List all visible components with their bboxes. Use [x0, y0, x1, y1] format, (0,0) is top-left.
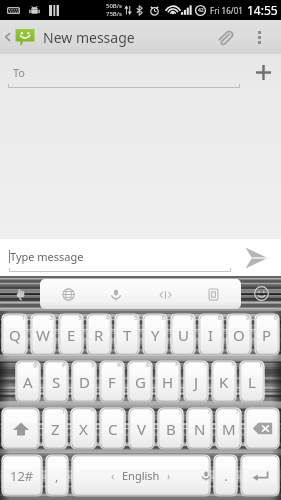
staticText: U — [178, 325, 189, 345]
button[interactable]: P — [254, 313, 280, 356]
button[interactable]: F — [99, 360, 125, 403]
button[interactable]: U — [170, 313, 196, 356]
staticText: - — [204, 362, 206, 369]
staticText: ( — [260, 362, 262, 369]
staticText: 50B/s — [106, 2, 122, 10]
staticText: D — [79, 372, 90, 392]
button[interactable]: E — [58, 313, 84, 356]
staticText: 0 — [274, 315, 277, 322]
button[interactable]: N — [186, 407, 213, 450]
staticText: 42 — [198, 7, 204, 14]
staticText: : — [150, 409, 152, 416]
staticText: @ — [33, 362, 38, 369]
staticText: 7 — [190, 315, 193, 322]
staticText: Z — [51, 419, 60, 439]
button[interactable]: . — [213, 454, 238, 497]
staticText: English — [122, 468, 160, 483]
button[interactable]: , — [45, 454, 69, 497]
button[interactable]: K — [211, 360, 237, 403]
button[interactable]: I — [198, 313, 224, 356]
button[interactable]: Y — [142, 313, 168, 356]
staticText: 75B/s — [106, 10, 122, 18]
button[interactable]: B — [157, 407, 184, 450]
button[interactable]: Language — [48, 280, 88, 309]
button[interactable]: Space — [71, 454, 211, 497]
staticText: 5 — [134, 315, 137, 322]
staticText: K — [219, 372, 229, 392]
button[interactable]: Z — [42, 407, 68, 450]
button[interactable]: Resize keyboard — [145, 280, 185, 309]
staticText: S — [52, 372, 61, 392]
staticText: P — [262, 325, 272, 345]
button[interactable]: Q — [1, 313, 28, 356]
staticText: ' — [121, 409, 123, 416]
button[interactable]: C — [99, 407, 126, 450]
staticText: V — [137, 419, 147, 439]
staticText: W — [36, 325, 50, 345]
staticText: 6 — [162, 315, 165, 322]
button[interactable]: Voice input — [96, 280, 136, 309]
button[interactable]: R — [86, 313, 112, 356]
staticText: 2 — [50, 315, 53, 322]
button[interactable]: O — [226, 313, 252, 356]
staticText: C — [108, 419, 118, 439]
staticText: 4 — [106, 315, 109, 322]
staticText: ? — [236, 409, 239, 416]
button[interactable]: J — [183, 360, 209, 403]
staticText: ! — [63, 409, 65, 416]
staticText: R — [94, 325, 104, 345]
staticText: B — [166, 419, 176, 439]
staticText: 9 — [246, 315, 249, 322]
button[interactable]: T — [114, 313, 140, 356]
staticText: " — [91, 409, 94, 416]
staticText: A — [23, 372, 33, 392]
button[interactable]: X — [70, 407, 97, 450]
staticText: 3 — [78, 315, 81, 322]
staticText: & — [146, 362, 150, 369]
button[interactable]: M — [215, 407, 242, 450]
button[interactable]: Clipboard — [193, 280, 233, 309]
staticText: Q — [9, 325, 21, 345]
staticText: X — [79, 419, 88, 439]
button[interactable]: Add recipient — [245, 54, 281, 91]
button[interactable]: G — [127, 360, 153, 403]
staticText: N — [194, 419, 206, 439]
button[interactable]: New message — [0, 20, 141, 54]
button[interactable]: W — [30, 313, 56, 356]
button[interactable]: D — [71, 360, 97, 403]
staticText: # — [62, 362, 66, 369]
staticText: + — [231, 362, 234, 369]
button[interactable]: More options — [244, 20, 274, 54]
staticText: Type message — [10, 249, 84, 264]
staticText: J — [194, 372, 199, 392]
button[interactable]: Handwriting — [0, 276, 40, 311]
staticText: . — [224, 467, 228, 485]
button[interactable]: H — [155, 360, 181, 403]
staticText: New message — [43, 28, 135, 47]
button[interactable]: A — [15, 360, 41, 403]
button[interactable]: Shift — [1, 407, 40, 450]
staticText: Fri 16/01 — [210, 5, 243, 16]
button[interactable]: L — [239, 360, 265, 403]
staticText: % — [117, 362, 122, 369]
button[interactable]: V — [128, 407, 155, 450]
staticText: T — [123, 325, 132, 345]
button[interactable]: Backspace — [244, 407, 280, 450]
staticText: E — [67, 325, 76, 345]
staticText: ; — [179, 409, 181, 416]
staticText: 14:55 — [247, 2, 278, 18]
button[interactable]: Emoji — [241, 276, 281, 311]
staticText: 12# — [10, 467, 34, 485]
staticText: O — [233, 325, 245, 345]
staticText: F — [108, 372, 116, 392]
staticText: / — [208, 409, 210, 416]
button[interactable]: S — [43, 360, 69, 403]
button[interactable]: Enter — [240, 454, 280, 497]
staticText: H — [162, 372, 174, 392]
button[interactable]: 12# — [1, 454, 43, 497]
button[interactable]: Attach — [204, 20, 244, 54]
button[interactable]: Send — [231, 239, 281, 276]
staticText: M — [222, 419, 236, 439]
staticText: G — [135, 372, 146, 392]
staticText: I — [208, 325, 214, 345]
